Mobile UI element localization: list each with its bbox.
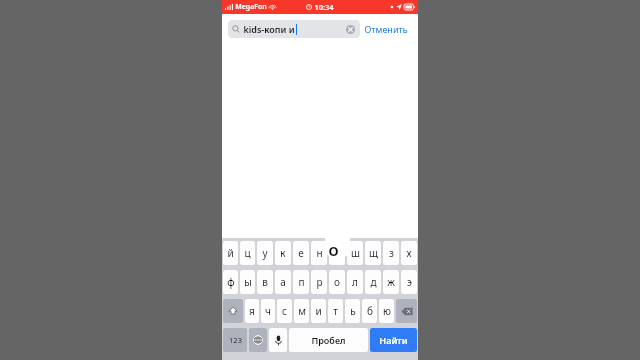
- staticText: Найти: [379, 334, 408, 346]
- staticText: щ: [369, 246, 378, 260]
- button[interactable]: о: [329, 270, 345, 294]
- button[interactable]: Пробел: [289, 328, 368, 352]
- staticText: ш: [351, 246, 360, 260]
- staticText: с: [282, 304, 287, 318]
- staticText: п: [298, 275, 305, 289]
- button[interactable]: б: [362, 299, 377, 323]
- button[interactable]: в: [257, 270, 273, 294]
- staticText: у: [262, 246, 268, 260]
- button[interactable]: Dictation: [269, 328, 287, 352]
- staticText: н: [316, 246, 323, 260]
- staticText: х: [406, 246, 412, 260]
- button[interactable]: а: [275, 270, 291, 294]
- staticText: О: [328, 242, 339, 260]
- staticText: ю: [383, 304, 391, 318]
- staticText: MegaFon: [235, 2, 267, 12]
- button[interactable]: и: [311, 299, 326, 323]
- staticText: Отменить: [364, 23, 408, 35]
- staticText: ж: [387, 275, 395, 289]
- button[interactable]: ц: [240, 241, 255, 265]
- button[interactable]: г: [329, 241, 345, 265]
- button[interactable]: м: [294, 299, 309, 323]
- button[interactable]: н: [311, 241, 327, 265]
- staticText: б: [367, 304, 373, 318]
- button[interactable]: д: [365, 270, 381, 294]
- button[interactable]: Отменить: [360, 19, 412, 39]
- button[interactable]: р: [311, 270, 327, 294]
- staticText: в: [262, 275, 268, 289]
- staticText: Пробел: [311, 334, 346, 346]
- button[interactable]: п: [293, 270, 309, 294]
- staticText: я: [249, 304, 255, 318]
- staticText: э: [407, 275, 412, 289]
- button[interactable]: Clear text: [345, 24, 356, 35]
- button[interactable]: kids-копи и: [228, 20, 360, 38]
- button[interactable]: ь: [345, 299, 360, 323]
- button[interactable]: й: [223, 241, 238, 265]
- button[interactable]: к: [275, 241, 291, 265]
- button[interactable]: у: [257, 241, 273, 265]
- button[interactable]: ы: [240, 270, 255, 294]
- button[interactable]: ж: [383, 270, 399, 294]
- staticText: 123: [229, 335, 242, 345]
- button[interactable]: т: [328, 299, 343, 323]
- staticText: 10:34: [314, 2, 334, 12]
- button[interactable]: щ: [365, 241, 381, 265]
- staticText: kids-копи и: [243, 23, 295, 35]
- button[interactable]: з: [383, 241, 399, 265]
- button[interactable]: е: [293, 241, 309, 265]
- button[interactable]: 123: [223, 328, 247, 352]
- button[interactable]: э: [401, 270, 417, 294]
- staticText: й: [227, 246, 234, 260]
- button[interactable]: я: [245, 299, 259, 323]
- staticText: р: [316, 275, 323, 289]
- staticText: т: [333, 304, 338, 318]
- staticText: к: [280, 246, 286, 260]
- staticText: м: [298, 304, 306, 318]
- staticText: о: [334, 275, 340, 289]
- button[interactable]: х: [401, 241, 417, 265]
- staticText: ч: [265, 304, 271, 318]
- button[interactable]: ш: [347, 241, 363, 265]
- staticText: ь: [350, 304, 356, 318]
- button[interactable]: Backspace: [396, 299, 417, 323]
- staticText: д: [370, 275, 377, 289]
- button[interactable]: Change keyboard language: [249, 328, 267, 352]
- staticText: з: [389, 246, 394, 260]
- staticText: г: [335, 246, 340, 260]
- staticText: и: [315, 304, 322, 318]
- button[interactable]: ф: [223, 270, 238, 294]
- staticText: ы: [244, 275, 252, 289]
- button[interactable]: Найти: [370, 328, 417, 352]
- staticText: ц: [244, 246, 251, 260]
- staticText: ф: [227, 275, 235, 289]
- staticText: е: [298, 246, 304, 260]
- button[interactable]: Shift: [223, 299, 243, 323]
- button[interactable]: с: [277, 299, 292, 323]
- staticText: а: [280, 275, 286, 289]
- staticText: л: [352, 275, 358, 289]
- button[interactable]: ч: [261, 299, 275, 323]
- button[interactable]: л: [347, 270, 363, 294]
- button[interactable]: ю: [379, 299, 394, 323]
